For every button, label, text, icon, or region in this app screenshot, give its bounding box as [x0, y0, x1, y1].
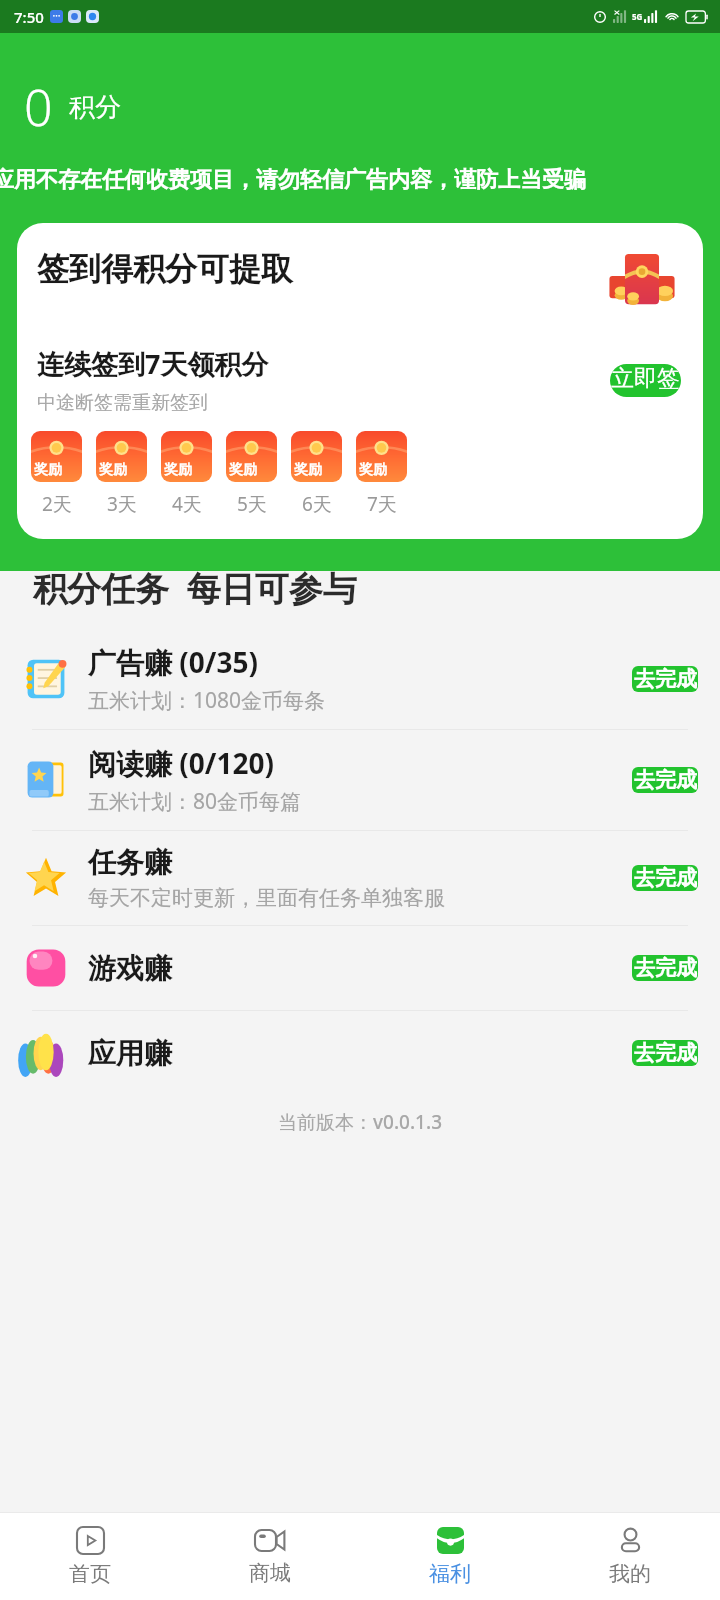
other: 福利	[437, 1527, 464, 1554]
staticText: 连续签到7天领积分	[37, 345, 269, 382]
staticText: 中途断签需重新签到	[37, 391, 208, 415]
staticText: 应用赚	[88, 1036, 172, 1071]
staticText: 任务赚	[88, 845, 172, 880]
button[interactable]: 去完成	[632, 955, 698, 981]
staticText: 去完成	[634, 666, 697, 692]
staticText: 商城	[249, 1560, 291, 1586]
other: 商城	[255, 1528, 285, 1553]
staticText: 4天	[172, 491, 202, 517]
staticText: 签到得积分可提取	[37, 249, 293, 289]
button[interactable]: 首页	[0, 1513, 180, 1600]
staticText: 奖励	[294, 461, 322, 479]
button[interactable]: 去完成	[632, 666, 698, 692]
button[interactable]: 去完成	[632, 865, 698, 891]
staticText: 首页	[69, 1561, 111, 1587]
staticText: 阅读赚 (0/120)	[88, 744, 274, 782]
staticText: 奖励	[164, 461, 192, 479]
staticText: 福利	[429, 1561, 471, 1587]
button[interactable]: 去完成	[632, 1040, 698, 1066]
staticText: 3天	[107, 491, 137, 517]
button[interactable]: 任务赚	[0, 831, 720, 925]
button[interactable]: 奖励	[291, 431, 342, 482]
staticText: 五米计划：1080金币每条	[88, 686, 326, 715]
staticText: 我的	[609, 1561, 651, 1587]
button[interactable]: 奖励	[226, 431, 277, 482]
staticText: 去完成	[634, 767, 697, 793]
other: 我的	[617, 1527, 644, 1554]
staticText: 应用不存在任何收费项目，请勿轻信广告内容，谨防上当受骗	[0, 166, 586, 194]
staticText: 当前版本：v0.0.1.3	[0, 1109, 720, 1135]
button[interactable]: 奖励	[161, 431, 212, 482]
button[interactable]: 广告赚 (0/35)	[0, 629, 720, 729]
staticText: 奖励	[229, 461, 257, 479]
staticText: 积分	[69, 91, 121, 124]
button[interactable]: 应用赚	[0, 1011, 720, 1095]
button[interactable]: 立即签到	[610, 364, 681, 397]
button[interactable]: 福利	[360, 1513, 540, 1600]
button[interactable]: 游戏赚	[0, 926, 720, 1010]
staticText: 每天不定时更新，里面有任务单独客服	[88, 885, 445, 911]
staticText: 奖励	[34, 461, 62, 479]
staticText: 游戏赚	[88, 951, 172, 986]
staticText: 奖励	[359, 461, 387, 479]
button[interactable]: 奖励	[356, 431, 407, 482]
button[interactable]: 我的	[540, 1513, 720, 1600]
staticText: 去完成	[634, 955, 697, 981]
staticText: 奖励	[99, 461, 127, 479]
staticText: 去完成	[634, 865, 697, 891]
staticText: 0	[24, 73, 53, 141]
staticText: 5天	[237, 491, 267, 517]
staticText: 广告赚 (0/35)	[88, 643, 258, 681]
staticText: 7:50	[14, 7, 44, 27]
staticText: 去完成	[634, 1040, 697, 1066]
button[interactable]: 奖励	[96, 431, 147, 482]
staticText: 立即签到	[610, 364, 681, 397]
button[interactable]: 商城	[180, 1513, 360, 1600]
button[interactable]: 阅读赚 (0/120)	[0, 730, 720, 830]
button[interactable]: 去完成	[632, 767, 698, 793]
staticText: 5G	[632, 11, 643, 22]
button[interactable]: 奖励	[31, 431, 82, 482]
staticText: 五米计划：80金币每篇	[88, 787, 302, 816]
staticText: 积分任务 每日可参与	[33, 565, 357, 611]
staticText: 6天	[302, 491, 332, 517]
other: 首页	[77, 1527, 104, 1554]
staticText: 7天	[367, 491, 397, 517]
staticText: 2天	[42, 491, 72, 517]
